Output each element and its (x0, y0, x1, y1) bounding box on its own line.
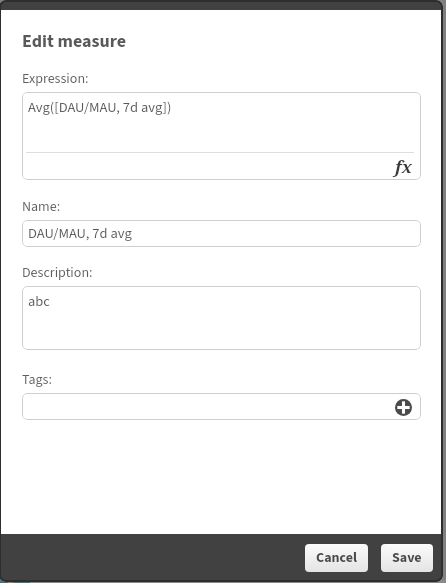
staticText: Expression: (22, 69, 89, 89)
staticText: Description: (22, 263, 93, 283)
staticText: DAU/MAU, 7d avg (28, 223, 132, 244)
button[interactable]: Avg([DAU/MAU, 7d avg]) (22, 92, 421, 180)
staticText: abc (28, 291, 50, 312)
button[interactable]: Cancel (305, 544, 368, 572)
button[interactable]: Add tag (392, 396, 414, 418)
staticText: fx (395, 155, 413, 178)
staticText: Edit measure (22, 29, 127, 55)
button[interactable]: abc (22, 286, 421, 350)
button[interactable]: Save (381, 544, 433, 572)
staticText: Cancel (316, 548, 357, 568)
staticText: Save (392, 548, 422, 568)
button[interactable]: DAU/MAU, 7d avg (22, 220, 421, 247)
button[interactable]: Open expression editor (391, 153, 417, 179)
staticText: Avg([DAU/MAU, 7d avg]) (28, 97, 172, 118)
staticText: Tags: (22, 370, 52, 390)
button[interactable]: Add tag (22, 393, 421, 420)
staticText: Name: (22, 197, 61, 217)
